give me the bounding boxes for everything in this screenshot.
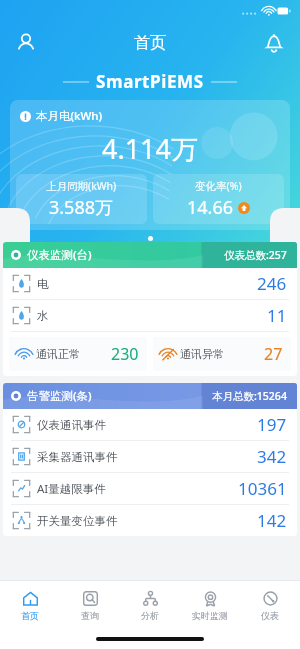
staticText: 通讯异常 (180, 347, 224, 361)
staticText: 电 (37, 277, 49, 291)
staticText: 上月同期(kWh) (46, 179, 117, 193)
staticText: 4.114万 (102, 130, 199, 167)
button[interactable]: 变化率(%) (153, 174, 284, 224)
staticText: 采集器通讯事件 (37, 450, 118, 464)
button[interactable]: 首页 (0, 581, 60, 629)
staticText: 通讯正常 (36, 347, 80, 361)
button[interactable]: 分析 (120, 581, 180, 629)
staticText: 首页 (44, 33, 256, 53)
staticText: 仪表监测(台) (27, 247, 92, 263)
button[interactable]: 通讯正常 (9, 337, 147, 371)
staticText: 本月总数:15264 (212, 389, 287, 403)
staticText: 11 (267, 304, 287, 327)
staticText: 告警监测(条) (27, 388, 92, 404)
button[interactable]: 开关量变位事件 (3, 505, 297, 536)
staticText: 首页 (21, 610, 39, 621)
staticText: 仪表总数:257 (224, 248, 287, 262)
staticText: AI量越限事件 (37, 481, 106, 497)
staticText: 246 (257, 272, 287, 295)
button[interactable]: 告警监测(条) (3, 383, 297, 409)
button[interactable]: 上月同期(kWh) (16, 174, 147, 224)
button[interactable]: 通讯异常 (153, 337, 291, 371)
staticText: 仪表 (261, 610, 279, 621)
staticText: 342 (257, 445, 287, 468)
staticText: 水 (37, 309, 49, 323)
button[interactable]: Notifications (256, 25, 292, 61)
staticText: 230 (111, 343, 139, 365)
button[interactable]: 仪表 (240, 581, 300, 629)
button[interactable]: Profile (8, 25, 44, 61)
staticText: 197 (257, 413, 287, 436)
staticText: 开关量变位事件 (37, 514, 118, 528)
button[interactable]: 实时监测 (180, 581, 240, 629)
staticText: 查询 (81, 610, 99, 621)
button[interactable]: 查询 (60, 581, 120, 629)
button[interactable]: 本月电(kWh) (10, 100, 290, 230)
staticText: 10361 (238, 477, 287, 500)
button[interactable]: 采集器通讯事件 (3, 441, 297, 472)
staticText: 变化率(%) (195, 179, 242, 193)
staticText: 27 (264, 343, 283, 365)
staticText: 分析 (141, 610, 159, 621)
staticText: 本月电(kWh) (36, 108, 103, 124)
staticText: 14.66 (187, 195, 234, 220)
button[interactable]: 仪表监测(台) (3, 242, 297, 268)
button[interactable]: AI量越限事件 (3, 473, 297, 504)
button[interactable]: 水 (3, 300, 297, 331)
staticText: 142 (257, 509, 287, 532)
staticText: SmartPiEMS (96, 70, 204, 93)
button[interactable]: 电 (3, 268, 297, 299)
button[interactable]: 仪表通讯事件 (3, 409, 297, 440)
staticText: 仪表通讯事件 (37, 418, 106, 432)
staticText: 实时监测 (192, 610, 228, 621)
staticText: 3.588万 (49, 195, 114, 220)
